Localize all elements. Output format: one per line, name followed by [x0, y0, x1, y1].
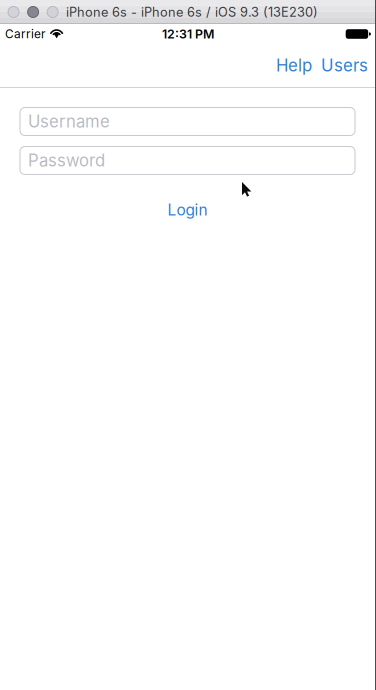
button[interactable]: Help: [272, 44, 316, 87]
staticText: Carrier: [5, 27, 45, 41]
staticText: iPhone 6s - iPhone 6s / iOS 9.3 (13E230): [66, 4, 318, 20]
staticText: Users: [321, 55, 368, 76]
staticText: Login: [167, 200, 207, 219]
staticText: Username: [28, 111, 110, 132]
button[interactable]: Users: [317, 44, 372, 87]
staticText: Help: [276, 55, 312, 76]
staticText: 12:31 PM: [162, 26, 214, 41]
button[interactable]: Login: [155, 196, 219, 223]
staticText: Password: [28, 150, 105, 171]
